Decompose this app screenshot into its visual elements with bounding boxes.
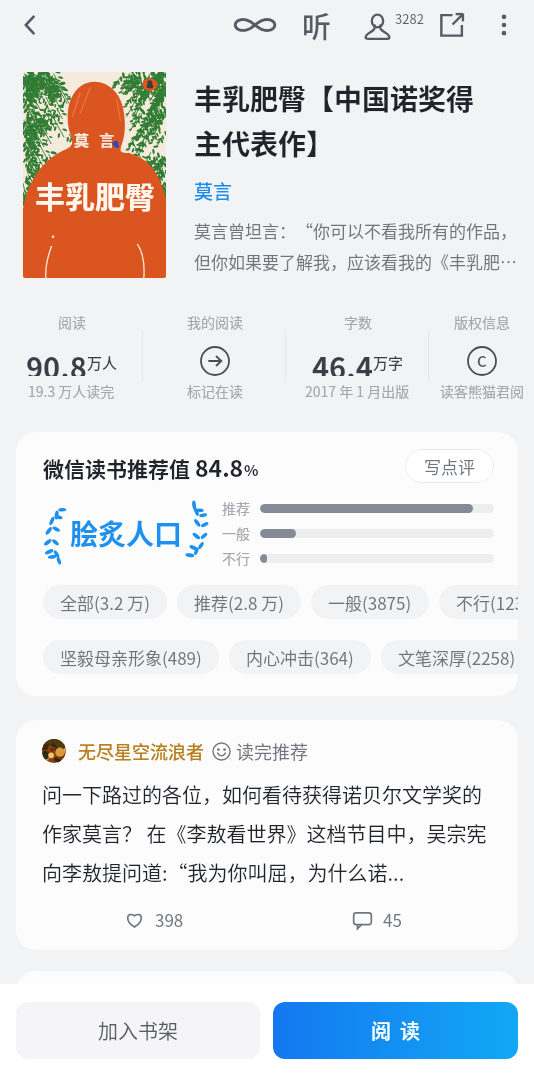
- staticText: 万人: [87, 352, 118, 374]
- staticText: 84.8: [195, 450, 244, 483]
- staticText: 3282: [395, 9, 424, 28]
- button[interactable]: Readers 3282: [362, 1, 428, 49]
- staticText: 听: [302, 4, 332, 46]
- staticText: 阅 读: [371, 1016, 420, 1045]
- button[interactable]: 坚毅母亲形象(489): [43, 640, 219, 674]
- staticText: 46.4: [312, 345, 373, 376]
- staticText: 版权信息: [454, 312, 510, 332]
- staticText: 微信读书推荐值: [43, 453, 195, 483]
- staticText: 45: [383, 907, 402, 932]
- staticText: 写点评: [424, 454, 475, 479]
- staticText: 阅读: [58, 312, 86, 332]
- staticText: 一般(3875): [328, 590, 412, 615]
- button[interactable]: 版权信息: [429, 306, 534, 406]
- staticText: 19.3 万人读完: [28, 381, 115, 401]
- button[interactable]: 推荐(2.8 万): [177, 585, 301, 619]
- button[interactable]: 阅读: [0, 306, 143, 406]
- staticText: 内心冲击(364): [246, 645, 354, 670]
- button[interactable]: Comments 45: [265, 907, 488, 932]
- staticText: 莫 言: [74, 129, 115, 151]
- button[interactable]: 加入书架: [16, 1002, 260, 1059]
- button[interactable]: 字数: [286, 306, 429, 406]
- staticText: 标记在读: [187, 381, 243, 401]
- staticText: 不行: [222, 548, 250, 568]
- button[interactable]: More options: [482, 3, 526, 47]
- button[interactable]: 阅 读: [273, 1002, 518, 1059]
- staticText: 坚毅母亲形象(489): [60, 645, 202, 670]
- staticText: 90.8: [26, 345, 87, 376]
- button[interactable]: 我的阅读: [143, 306, 286, 406]
- staticText: 全部(3.2 万): [60, 590, 150, 615]
- button[interactable]: 一般(3875): [311, 585, 429, 619]
- staticText: 脍炙人口: [70, 513, 183, 554]
- button[interactable]: Unlimited card: [231, 1, 279, 49]
- staticText: %: [244, 459, 259, 481]
- staticText: 读客熊猫君阅: [440, 381, 524, 401]
- staticText: 莫言曾坦言：“你可以不看我所有的作品，但你如果要了解我，应该看我的《丰乳肥臀》: [194, 218, 524, 274]
- staticText: 丰乳肥臀【中国诺奖得主代表作】: [194, 78, 490, 163]
- staticText: 不行(1234): [456, 590, 518, 615]
- button[interactable]: 不行(1234): [439, 585, 518, 619]
- staticText: 读完推荐: [236, 738, 308, 764]
- staticText: 2017 年 1 月出版: [305, 381, 410, 401]
- staticText: 文笔深厚(2258): [398, 645, 516, 670]
- staticText: 398: [155, 907, 184, 932]
- staticText: 问一下路过的各位，如何看待获得诺贝尔文学奖的作家莫言？ 在《李敖看世界》这档节目…: [42, 780, 498, 887]
- button[interactable]: Share: [428, 1, 476, 49]
- button[interactable]: 全部(3.2 万): [43, 585, 167, 619]
- staticText: 加入书架: [98, 1016, 178, 1045]
- button[interactable]: Like 398: [42, 907, 265, 932]
- button[interactable]: Back: [8, 3, 52, 47]
- staticText: 万字: [373, 352, 404, 374]
- staticText: 字数: [344, 312, 372, 332]
- button[interactable]: 文笔深厚(2258): [381, 640, 518, 674]
- button[interactable]: 写点评: [405, 449, 494, 483]
- staticText: 我的阅读: [187, 312, 243, 332]
- staticText: 推荐: [222, 498, 250, 518]
- staticText: 一般: [222, 523, 250, 543]
- staticText: C: [477, 350, 487, 372]
- staticText: 无尽星空流浪者: [78, 738, 204, 764]
- button[interactable]: 内心冲击(364): [229, 640, 371, 674]
- staticText: 推荐(2.8 万): [194, 590, 284, 615]
- staticText: 莫言: [194, 177, 233, 205]
- staticText: 丰乳肥臀: [35, 173, 155, 216]
- button[interactable]: Listen: [293, 1, 341, 49]
